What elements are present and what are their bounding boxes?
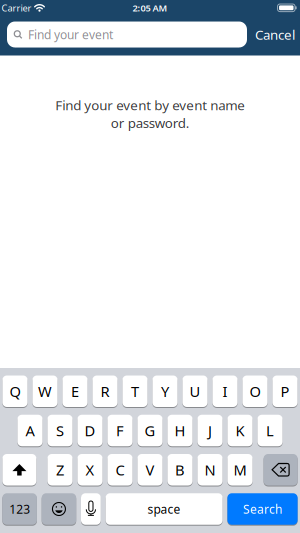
staticText: Z bbox=[56, 460, 64, 479]
button[interactable]: 123 bbox=[2, 493, 37, 525]
button[interactable]: T bbox=[122, 375, 148, 407]
button[interactable]: Dictate bbox=[81, 493, 101, 525]
staticText: C bbox=[115, 460, 124, 479]
button[interactable]: H bbox=[167, 415, 193, 446]
staticText: K bbox=[235, 421, 244, 440]
staticText: F bbox=[116, 421, 124, 440]
button[interactable]: space bbox=[106, 493, 223, 525]
staticText: D bbox=[84, 421, 95, 440]
button[interactable]: O bbox=[242, 375, 268, 407]
staticText: B bbox=[175, 460, 185, 479]
staticText: H bbox=[174, 421, 185, 440]
button[interactable]: G bbox=[137, 415, 163, 446]
staticText: space bbox=[148, 501, 181, 517]
button[interactable]: S bbox=[47, 415, 73, 446]
staticText: Search bbox=[243, 501, 282, 517]
button[interactable]: Search bbox=[227, 493, 298, 525]
button[interactable]: A bbox=[17, 415, 43, 446]
button[interactable]: F bbox=[107, 415, 133, 446]
staticText: A bbox=[25, 421, 34, 440]
button[interactable]: B bbox=[167, 454, 193, 485]
staticText: Carrier bbox=[1, 2, 31, 14]
button[interactable]: Q bbox=[2, 375, 28, 407]
button[interactable]: D bbox=[77, 415, 103, 446]
button[interactable]: R bbox=[92, 375, 118, 407]
staticText: U bbox=[189, 381, 200, 401]
staticText: W bbox=[38, 381, 52, 401]
button[interactable]: M bbox=[227, 454, 253, 485]
staticText: X bbox=[85, 460, 94, 479]
button[interactable]: V bbox=[137, 454, 163, 485]
staticText: Q bbox=[9, 381, 20, 401]
button[interactable]: W bbox=[32, 375, 58, 407]
button[interactable]: Z bbox=[47, 454, 73, 485]
staticText: Find your event by event name or passwor… bbox=[55, 96, 245, 132]
staticText: N bbox=[204, 460, 215, 479]
staticText: I bbox=[222, 381, 227, 401]
button[interactable]: Find your event bbox=[7, 21, 247, 47]
button[interactable]: E bbox=[62, 375, 88, 407]
staticText: E bbox=[71, 381, 79, 401]
button[interactable]: P bbox=[272, 375, 298, 407]
button[interactable]: Delete bbox=[264, 454, 298, 485]
staticText: J bbox=[208, 421, 212, 440]
button[interactable]: Emoji bbox=[42, 493, 76, 525]
staticText: P bbox=[280, 381, 289, 401]
staticText: 2:05 AM bbox=[132, 2, 167, 14]
staticText: O bbox=[249, 381, 260, 401]
button[interactable]: Cancel bbox=[255, 26, 295, 43]
button[interactable]: I bbox=[212, 375, 238, 407]
staticText: T bbox=[131, 381, 139, 401]
button[interactable]: Shift bbox=[2, 454, 36, 485]
button[interactable]: Y bbox=[152, 375, 178, 407]
button[interactable]: J bbox=[197, 415, 223, 446]
button[interactable]: K bbox=[227, 415, 253, 446]
button[interactable]: L bbox=[257, 415, 283, 446]
staticText: Cancel bbox=[255, 26, 295, 43]
staticText: 123 bbox=[9, 501, 30, 517]
button[interactable]: X bbox=[77, 454, 103, 485]
staticText: G bbox=[144, 421, 155, 440]
staticText: M bbox=[233, 460, 246, 479]
staticText: Y bbox=[161, 381, 169, 401]
staticText: R bbox=[100, 381, 109, 401]
button[interactable]: U bbox=[182, 375, 208, 407]
staticText: S bbox=[56, 421, 64, 440]
staticText: Find your event bbox=[28, 26, 113, 42]
staticText: V bbox=[145, 460, 154, 479]
button[interactable]: N bbox=[197, 454, 223, 485]
staticText: L bbox=[266, 421, 274, 440]
button[interactable]: C bbox=[107, 454, 133, 485]
